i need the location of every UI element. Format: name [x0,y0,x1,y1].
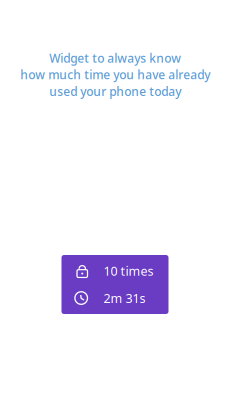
staticText: 10 times [103,262,153,279]
staticText: Widget to always know how much time you … [20,50,210,99]
staticText: 2m 31s [103,289,145,307]
button[interactable]: Screen time widget: unlocked 10 times, 2… [61,255,168,314]
